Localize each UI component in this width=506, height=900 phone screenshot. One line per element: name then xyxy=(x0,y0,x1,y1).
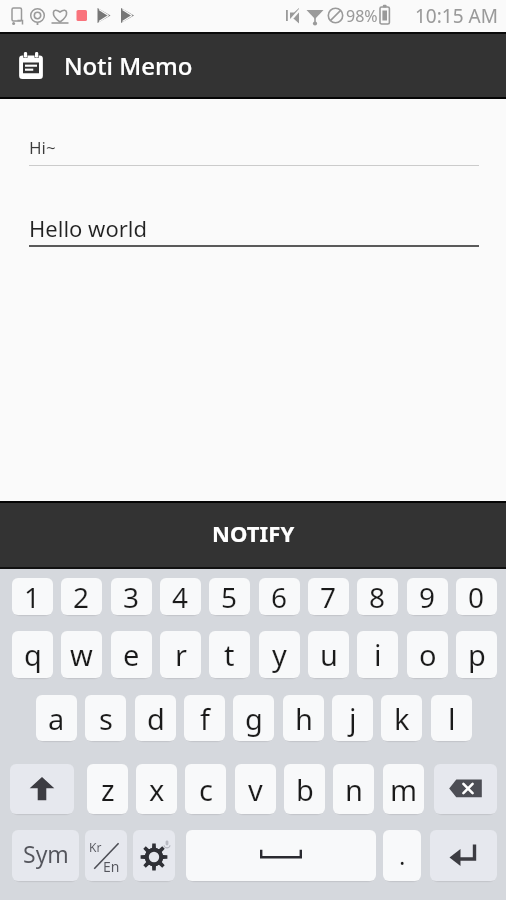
staticText: j xyxy=(349,699,357,738)
staticText: f xyxy=(200,699,210,738)
button[interactable]: n xyxy=(333,764,374,814)
button[interactable]: 6 xyxy=(259,578,300,615)
button[interactable]: k xyxy=(381,695,422,741)
staticText: 8 xyxy=(369,578,386,615)
staticText: 7 xyxy=(320,578,337,615)
staticText: NOTIFY xyxy=(212,518,295,548)
button[interactable]: i xyxy=(357,631,398,678)
staticText: n xyxy=(345,770,363,809)
staticText: l xyxy=(448,699,456,738)
staticText: v xyxy=(248,770,263,809)
staticText: 0 xyxy=(468,578,485,615)
button[interactable]: o xyxy=(407,631,448,678)
staticText: 2 xyxy=(73,578,90,615)
button[interactable]: . xyxy=(383,830,421,881)
staticText: En xyxy=(103,857,120,876)
button[interactable]: z xyxy=(87,764,128,814)
staticText: d xyxy=(147,699,165,738)
button[interactable]: t xyxy=(209,631,250,678)
staticText: a xyxy=(48,699,65,738)
button[interactable]: u xyxy=(308,631,349,678)
staticText: Sym xyxy=(23,838,69,869)
staticText: g xyxy=(245,699,263,738)
staticText: m xyxy=(390,770,418,809)
button[interactable]: 4 xyxy=(160,578,201,615)
staticText: Noti Memo xyxy=(64,49,193,82)
button[interactable]: e xyxy=(111,631,152,678)
staticText: . xyxy=(399,839,406,872)
staticText: i xyxy=(374,635,382,674)
staticText: p xyxy=(468,635,486,674)
button[interactable]: h xyxy=(283,695,324,741)
staticText: e xyxy=(123,635,140,674)
button[interactable]: j xyxy=(332,695,373,741)
button[interactable]: 2 xyxy=(61,578,102,615)
staticText: h xyxy=(295,699,313,738)
button[interactable]: 1 xyxy=(12,578,53,615)
button[interactable]: Space xyxy=(186,830,376,881)
staticText: c xyxy=(199,770,213,809)
button[interactable]: NOTIFY xyxy=(0,501,506,569)
button[interactable]: 7 xyxy=(308,578,349,615)
staticText: 3 xyxy=(123,578,140,615)
staticText: 4 xyxy=(172,578,189,615)
button[interactable]: s xyxy=(85,695,126,741)
button[interactable]: a xyxy=(36,695,77,741)
staticText: 98% xyxy=(346,5,378,27)
other: Memo xyxy=(16,51,46,81)
staticText: s xyxy=(99,699,113,738)
button[interactable]: r xyxy=(160,631,201,678)
staticText: 1 xyxy=(24,578,41,615)
button[interactable]: Settings xyxy=(133,830,175,881)
button[interactable]: 9 xyxy=(407,578,448,615)
staticText: u xyxy=(320,635,338,674)
button[interactable]: 0 xyxy=(456,578,497,615)
staticText: r xyxy=(175,635,187,674)
button[interactable]: q xyxy=(12,631,53,678)
button[interactable]: w xyxy=(61,631,102,678)
staticText: b xyxy=(296,770,314,809)
button[interactable]: x xyxy=(136,764,177,814)
staticText: 6 xyxy=(271,578,288,615)
staticText: 10:15 AM xyxy=(415,3,498,29)
button[interactable]: Korean English xyxy=(85,830,127,881)
staticText: o xyxy=(419,635,437,674)
button[interactable]: 8 xyxy=(357,578,398,615)
button[interactable]: 3 xyxy=(111,578,152,615)
button[interactable]: Sym xyxy=(12,830,79,881)
staticText: k xyxy=(394,699,410,738)
staticText: w xyxy=(70,635,93,674)
button[interactable]: y xyxy=(259,631,300,678)
button[interactable]: v xyxy=(235,764,276,814)
staticText: z xyxy=(101,770,115,809)
staticText: Hello world xyxy=(29,213,147,243)
staticText: 9 xyxy=(419,578,436,615)
button[interactable]: c xyxy=(185,764,226,814)
button[interactable]: d xyxy=(135,695,176,741)
button[interactable]: 5 xyxy=(209,578,250,615)
staticText: q xyxy=(24,635,42,674)
staticText: t xyxy=(224,635,235,674)
staticText: y xyxy=(272,635,287,674)
button[interactable]: b xyxy=(284,764,325,814)
button[interactable]: p xyxy=(456,631,497,678)
staticText: Hi~ xyxy=(29,136,56,159)
button[interactable]: f xyxy=(184,695,225,741)
button[interactable]: Enter xyxy=(430,830,497,881)
button[interactable]: Shift xyxy=(10,764,74,814)
button[interactable]: m xyxy=(383,764,424,814)
staticText: Kr xyxy=(89,839,102,855)
button[interactable]: l xyxy=(431,695,472,741)
staticText: x xyxy=(149,770,165,809)
button[interactable]: Backspace xyxy=(434,764,497,814)
staticText: 5 xyxy=(221,578,238,615)
button[interactable]: g xyxy=(233,695,274,741)
